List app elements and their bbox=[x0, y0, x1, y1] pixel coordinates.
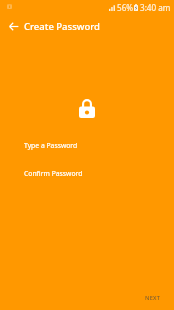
button[interactable]: Confirm Password bbox=[0, 163, 174, 183]
staticText: 56% bbox=[117, 2, 133, 13]
button[interactable]: Back bbox=[0, 12, 24, 40]
staticText: Confirm Password bbox=[24, 169, 83, 178]
other: Notification bbox=[7, 3, 12, 9]
staticText: Create Password bbox=[24, 20, 100, 33]
button[interactable]: Type a Password bbox=[0, 135, 174, 155]
other: Battery charging bbox=[134, 4, 138, 11]
staticText: Type a Password bbox=[24, 141, 78, 150]
button[interactable]: NEXT bbox=[139, 290, 167, 306]
staticText: 3:40 am bbox=[140, 2, 171, 13]
staticText: NEXT bbox=[145, 294, 161, 302]
